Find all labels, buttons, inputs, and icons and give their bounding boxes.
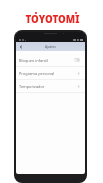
staticText: Ajustes — [45, 45, 56, 49]
button[interactable]: Bloqueo infantil — [16, 54, 85, 66]
button[interactable]: Back — [16, 42, 25, 51]
staticText: Programa personal — [19, 71, 55, 76]
staticText: Bloqueo infantil — [19, 58, 48, 63]
button[interactable]: Programa personal — [16, 67, 85, 79]
staticText: TOYOTOMI — [25, 13, 80, 26]
button[interactable]: Temporizador — [16, 80, 85, 92]
staticText: Temporizador — [19, 84, 45, 89]
